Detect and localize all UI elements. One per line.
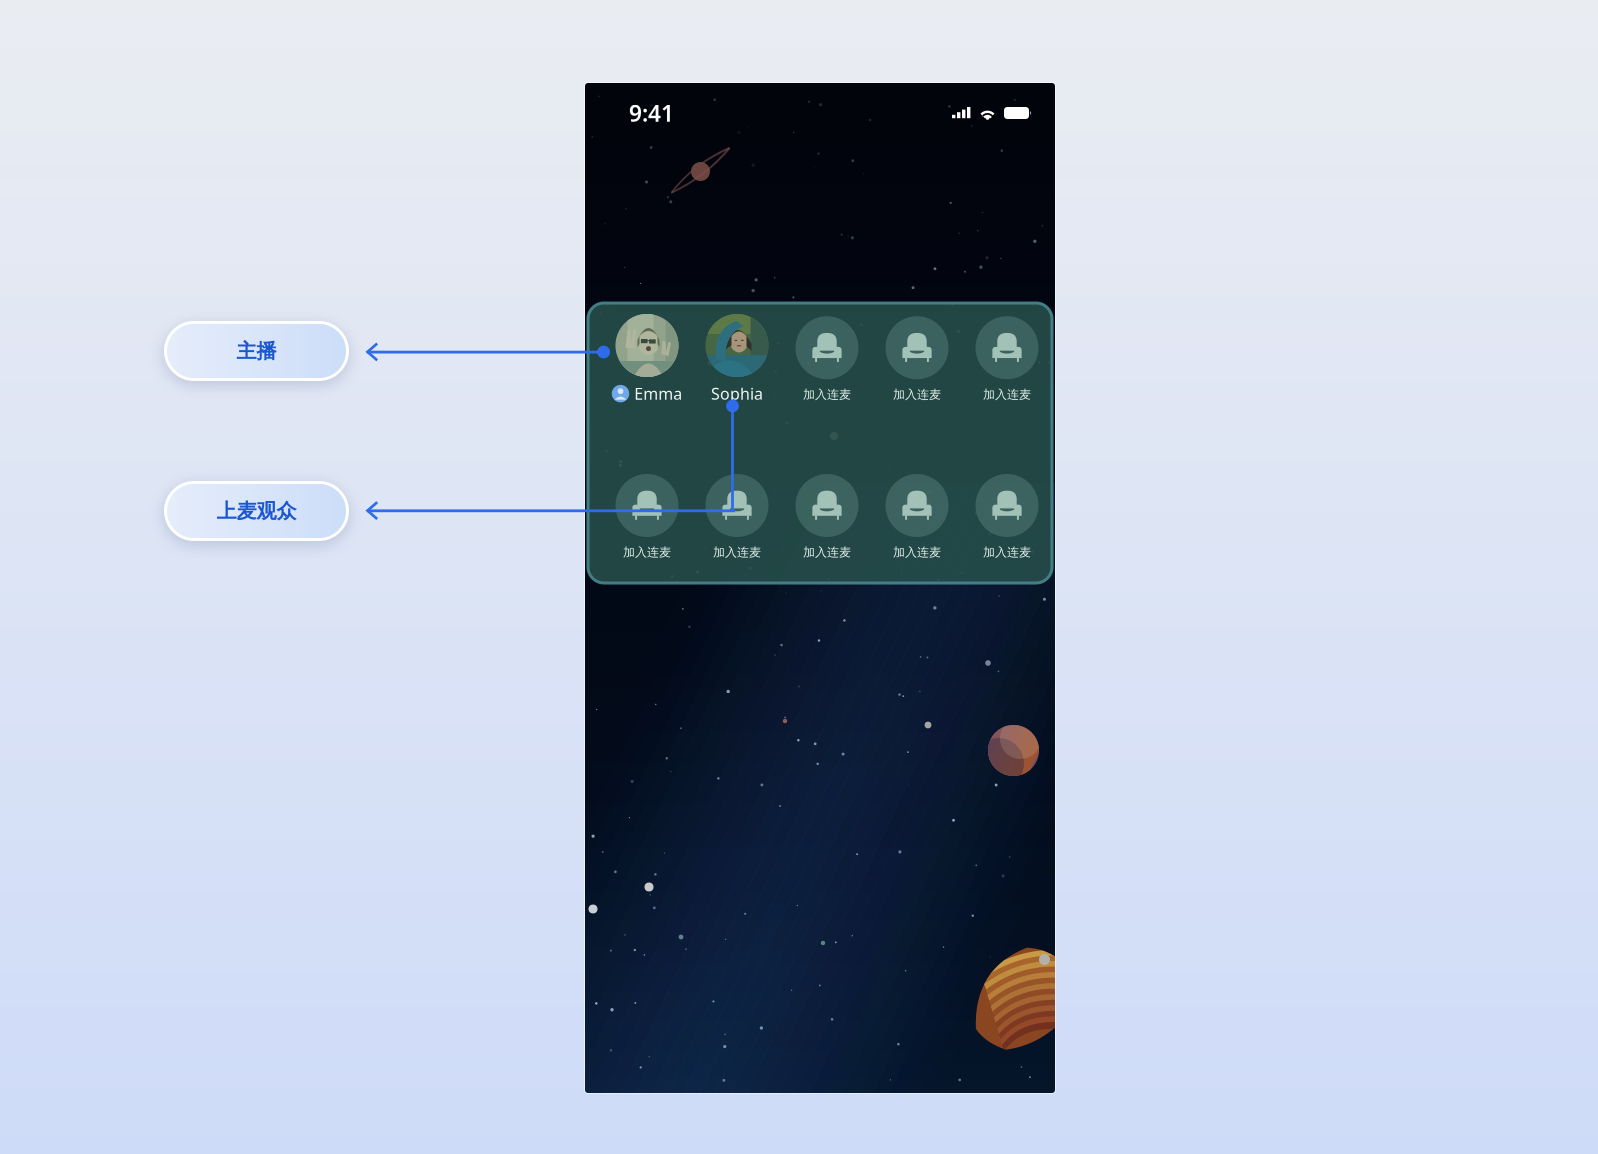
button[interactable]: 加入连麦 — [962, 474, 1052, 560]
button[interactable]: 加入连麦 — [872, 316, 962, 402]
staticText: 加入连麦 — [983, 387, 1031, 402]
button[interactable]: 加入连麦 — [962, 316, 1052, 402]
button[interactable]: 加入连麦 — [692, 474, 782, 560]
staticText: 加入连麦 — [713, 545, 761, 560]
button[interactable]: 加入连麦 — [602, 474, 692, 560]
staticText: 9:41 — [629, 98, 674, 128]
staticText: 主播 — [236, 339, 276, 363]
button[interactable]: Emma — [602, 314, 692, 404]
staticText: Emma — [634, 383, 682, 404]
staticText: 加入连麦 — [983, 545, 1031, 560]
staticText: 加入连麦 — [623, 545, 671, 560]
staticText: 加入连麦 — [893, 387, 941, 402]
staticText: 加入连麦 — [893, 545, 941, 560]
button[interactable]: 加入连麦 — [782, 474, 872, 560]
staticText: 上麦观众 — [216, 499, 296, 523]
staticText: 加入连麦 — [803, 545, 851, 560]
staticText: 加入连麦 — [803, 387, 851, 402]
staticText: Sophia — [711, 383, 763, 404]
button[interactable]: 加入连麦 — [872, 474, 962, 560]
button[interactable]: Sophia — [692, 314, 782, 404]
button[interactable]: 上麦观众 — [164, 481, 349, 541]
button[interactable]: 主播 — [164, 321, 349, 381]
button[interactable]: 加入连麦 — [782, 316, 872, 402]
